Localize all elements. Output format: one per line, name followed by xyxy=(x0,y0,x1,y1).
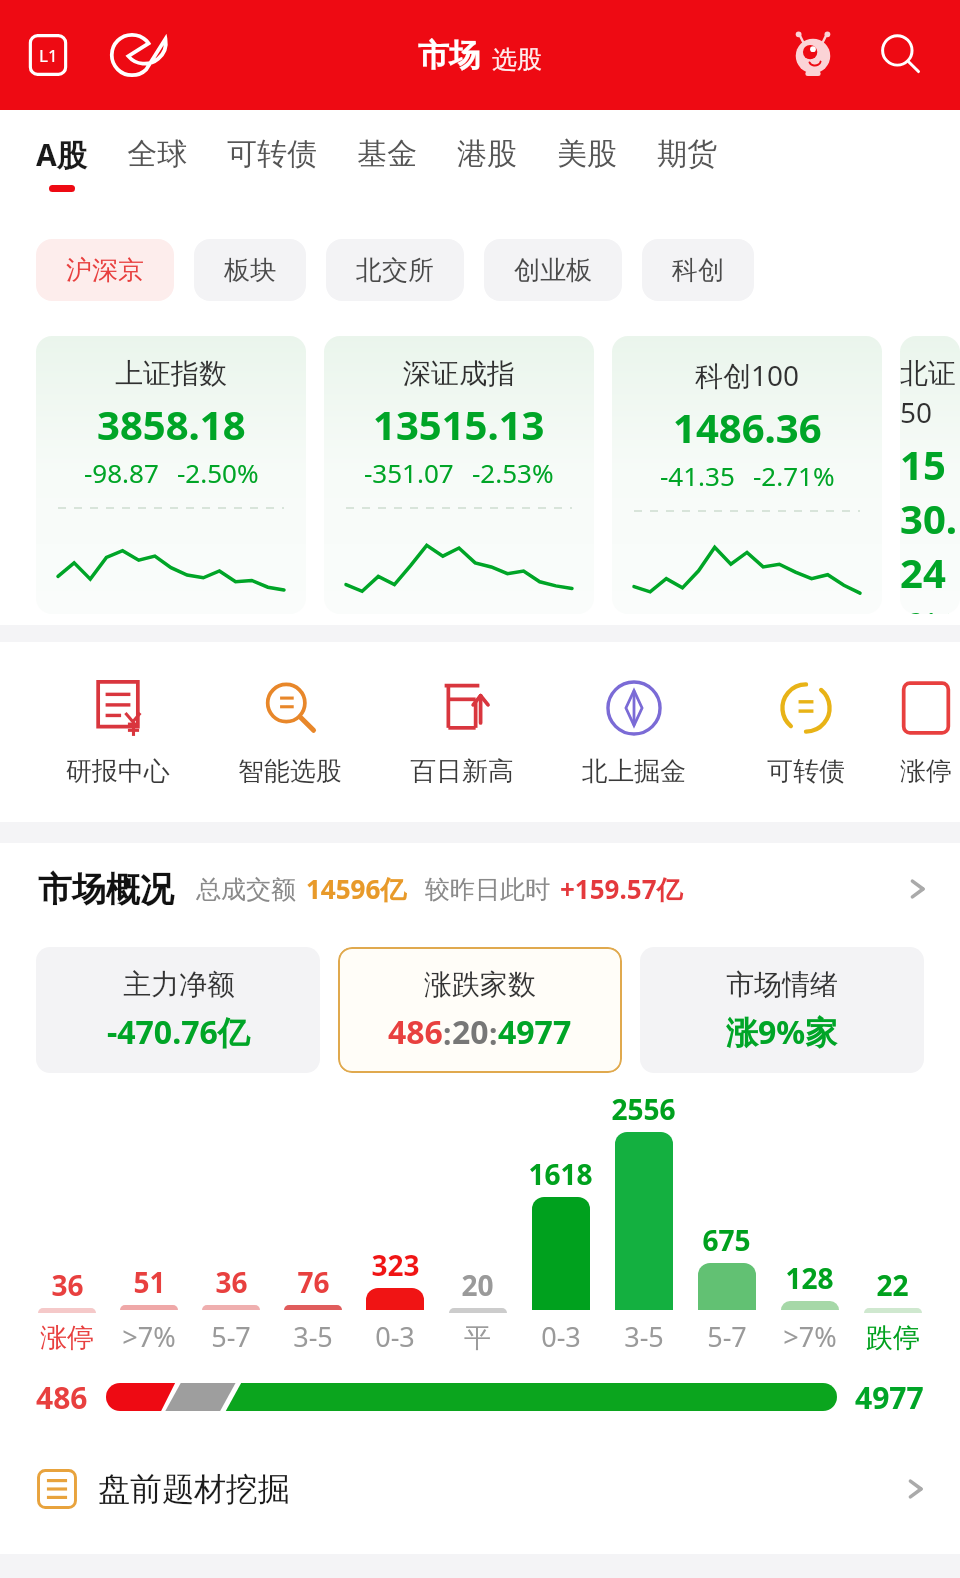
staticText: 深证成指 xyxy=(403,356,515,391)
staticText: 期货 xyxy=(657,135,717,173)
staticText: 486 xyxy=(36,1377,88,1418)
staticText: 3-5 xyxy=(624,1318,664,1355)
button[interactable]: 可转债 xyxy=(227,110,317,215)
button[interactable]: 北证50 xyxy=(900,336,960,614)
button[interactable]: 百日新高 xyxy=(376,677,548,788)
staticText: 22 xyxy=(876,1266,909,1304)
button[interactable]: 北交所 xyxy=(326,239,464,301)
staticText: 1530.24 xyxy=(900,437,960,599)
staticText: L1 xyxy=(39,44,58,67)
staticText: 跌停 xyxy=(866,1321,920,1355)
staticText: 675 xyxy=(702,1221,751,1259)
staticText: 盘前题材挖掘 xyxy=(98,1469,290,1509)
staticText: 2556 xyxy=(611,1090,676,1128)
button[interactable]: 选股 xyxy=(492,44,542,75)
staticText: 76 xyxy=(297,1263,330,1301)
button[interactable]: Search xyxy=(872,26,930,84)
staticText: 选股 xyxy=(492,44,542,75)
button[interactable]: 科创 xyxy=(642,239,754,301)
staticText: 百日新高 xyxy=(410,755,514,788)
staticText: -41.35 xyxy=(660,458,735,493)
staticText: 基金 xyxy=(357,135,417,173)
button[interactable]: 沪深京 xyxy=(36,239,174,301)
staticText: >7% xyxy=(122,1318,176,1355)
staticText: 上证指数 xyxy=(115,356,227,391)
staticText: 4977 xyxy=(498,1010,572,1054)
staticText: : xyxy=(489,1013,498,1054)
button[interactable]: 盘前题材挖掘 xyxy=(36,1439,930,1539)
staticText: 20 xyxy=(461,1266,494,1304)
staticText: 美股 xyxy=(557,135,617,173)
staticText: 0-3 xyxy=(375,1318,415,1355)
button[interactable]: Assistant xyxy=(784,26,842,84)
staticText: 3-5 xyxy=(293,1318,333,1355)
button[interactable]: 智能选股 xyxy=(204,677,376,788)
button[interactable]: 深证成指 xyxy=(324,336,594,614)
staticText: 128 xyxy=(785,1259,834,1297)
button[interactable]: A股 xyxy=(36,110,87,215)
staticText: 全球 xyxy=(127,135,187,173)
button[interactable]: 港股 xyxy=(457,110,517,215)
button[interactable]: 上证指数 xyxy=(36,336,306,614)
staticText: 51 xyxy=(133,1263,166,1301)
staticText: 创业板 xyxy=(514,254,592,287)
button[interactable]: 主力净额 xyxy=(36,947,320,1073)
button[interactable]: 板块 xyxy=(194,239,306,301)
button[interactable]: 涨停 xyxy=(892,677,960,788)
button[interactable]: 全球 xyxy=(127,110,187,215)
button[interactable]: Night mode xyxy=(104,27,160,83)
staticText: +159.57亿 xyxy=(560,871,683,907)
staticText: 323 xyxy=(371,1246,420,1284)
staticText: 可转债 xyxy=(767,755,845,788)
staticText: 20 xyxy=(452,1010,489,1054)
staticText: >7% xyxy=(783,1318,837,1355)
staticText: 36 xyxy=(51,1266,84,1304)
button[interactable]: Level 1 quotes xyxy=(20,27,76,83)
button[interactable]: 基金 xyxy=(357,110,417,215)
staticText: 3858.18 xyxy=(97,397,246,451)
staticText: 沪深京 xyxy=(66,254,144,287)
staticText: 北上掘金 xyxy=(582,755,686,788)
staticText: 总成交额 xyxy=(196,874,296,905)
staticText: 平 xyxy=(464,1321,491,1355)
button[interactable]: 可转债 xyxy=(720,677,892,788)
staticText: 涨停 xyxy=(40,1321,94,1355)
staticText: 港股 xyxy=(457,135,517,173)
staticText: 14596亿 xyxy=(306,871,407,907)
staticText: 市场概况 xyxy=(38,868,174,911)
staticText: 科创 xyxy=(672,254,724,287)
staticText: 4977 xyxy=(855,1377,924,1418)
staticText: -98.87 xyxy=(84,455,159,490)
staticText: : xyxy=(443,1013,452,1054)
staticText: 5-7 xyxy=(211,1318,251,1355)
button[interactable]: 北上掘金 xyxy=(548,677,720,788)
button[interactable]: 市场情绪 xyxy=(640,947,924,1073)
staticText: 板块 xyxy=(224,254,276,287)
staticText: 36 xyxy=(215,1263,248,1301)
button[interactable]: 涨跌家数 xyxy=(338,947,622,1073)
staticText: 市场 xyxy=(418,36,480,75)
staticText: A股 xyxy=(36,134,87,175)
staticText: 5-7 xyxy=(707,1318,747,1355)
staticText: 涨跌家数 xyxy=(424,967,536,1002)
staticText: 市场情绪 xyxy=(726,967,838,1002)
staticText: 可转债 xyxy=(227,135,317,173)
staticText: -2.71% xyxy=(753,458,835,493)
staticText: 较昨日此时 xyxy=(425,874,550,905)
staticText: -470.76亿 xyxy=(107,1010,250,1054)
staticText: -351.07 xyxy=(364,455,454,490)
staticText: 486 xyxy=(388,1010,443,1054)
staticText: 1618 xyxy=(528,1155,593,1193)
button[interactable]: 美股 xyxy=(557,110,617,215)
button[interactable]: 创业板 xyxy=(484,239,622,301)
staticText: 主力净额 xyxy=(123,967,235,1002)
button[interactable]: 科创100 xyxy=(612,336,882,614)
button[interactable]: 期货 xyxy=(657,110,717,215)
staticText: -2.50% xyxy=(177,455,259,490)
staticText: 13515.13 xyxy=(373,397,545,451)
staticText: 研报中心 xyxy=(66,755,170,788)
staticText: 北证50 xyxy=(900,356,960,431)
button[interactable]: 研报中心 xyxy=(32,677,204,788)
staticText: 涨9%家 xyxy=(726,1010,838,1054)
button[interactable]: 市场概况 xyxy=(38,843,932,935)
